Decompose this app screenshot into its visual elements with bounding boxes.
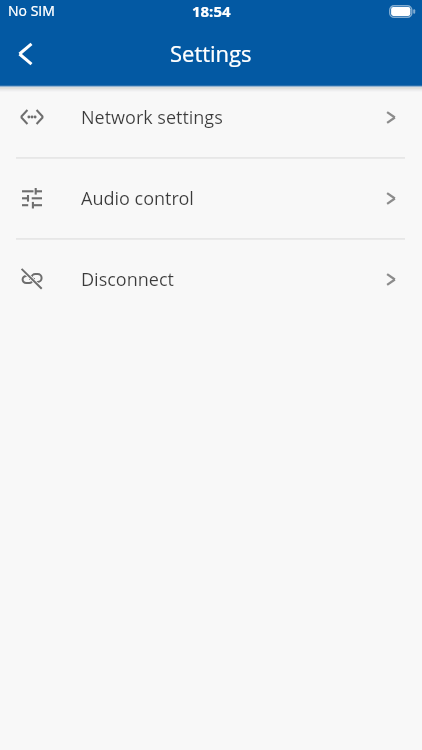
button[interactable]: Disconnect [0, 238, 422, 319]
button[interactable]: Audio control [0, 157, 422, 238]
staticText: Audio control [81, 186, 194, 211]
staticText: No SIM [8, 1, 55, 20]
staticText: Settings [170, 38, 252, 68]
button[interactable]: Back [1, 30, 49, 78]
staticText: 18:54 [192, 1, 231, 21]
staticText: Network settings [81, 105, 223, 130]
button[interactable]: Network settings [0, 85, 422, 157]
staticText: Disconnect [81, 267, 174, 292]
